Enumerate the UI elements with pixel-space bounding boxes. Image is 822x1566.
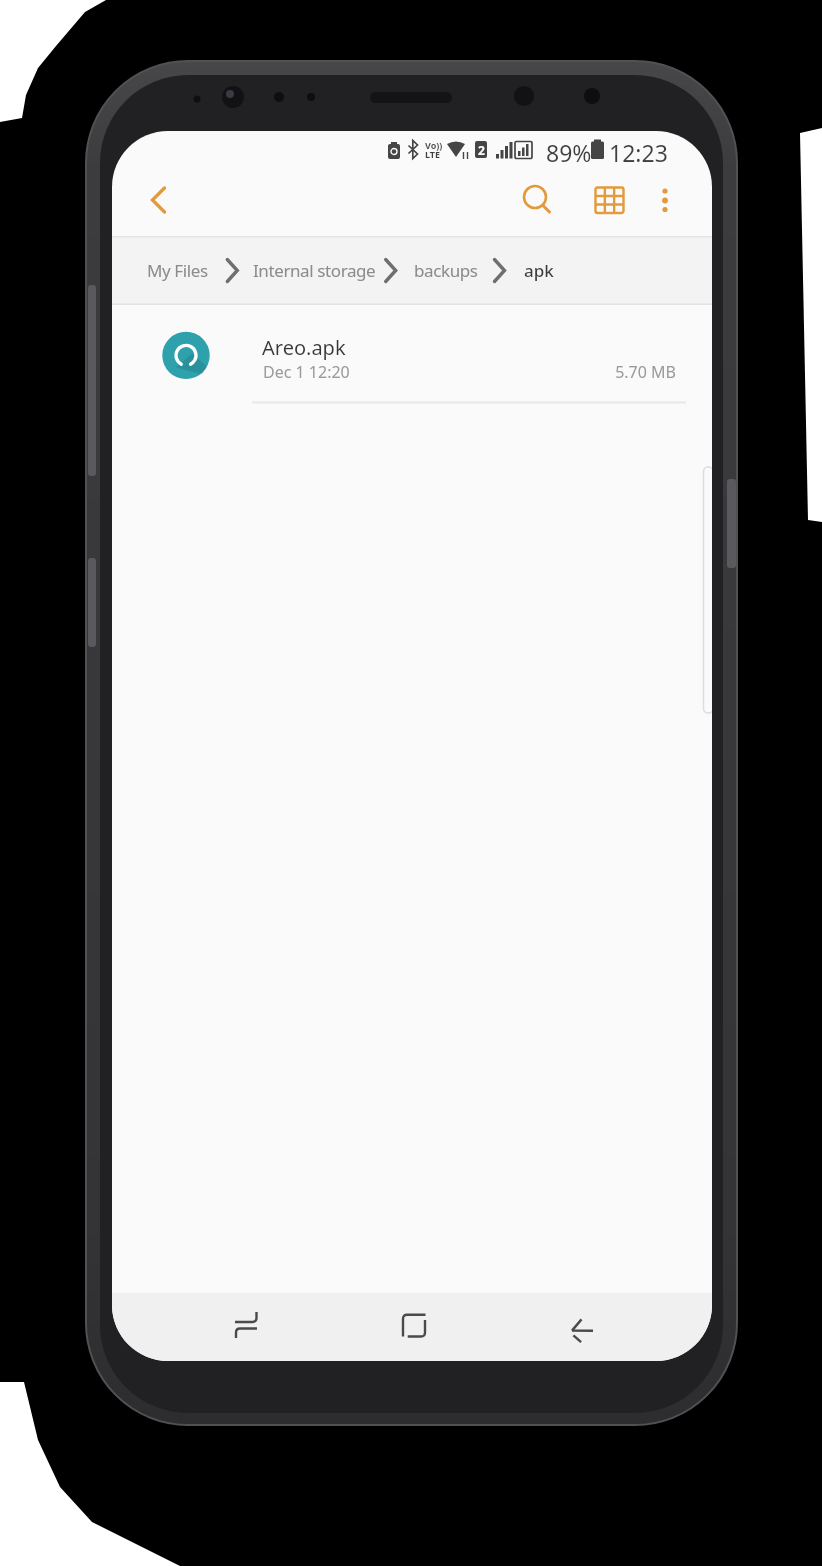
- button[interactable]: [140, 183, 176, 219]
- staticText: 2: [478, 142, 485, 158]
- staticText: 12:23: [609, 137, 668, 168]
- button[interactable]: backups: [414, 259, 478, 282]
- staticText: LTE: [425, 148, 441, 160]
- staticText: Dec 1 12:20: [263, 361, 350, 383]
- staticText: 89%: [546, 137, 592, 168]
- button[interactable]: [388, 1301, 440, 1353]
- button[interactable]: My Files: [147, 259, 208, 282]
- button[interactable]: Areo.apk: [112, 305, 712, 403]
- staticText: Vo)): [425, 139, 443, 151]
- button[interactable]: [518, 181, 556, 219]
- button[interactable]: [592, 183, 628, 219]
- button[interactable]: apk: [524, 259, 554, 282]
- button[interactable]: [558, 1301, 610, 1353]
- staticText: 5.70 MB: [556, 361, 676, 383]
- staticText: Areo.apk: [262, 334, 346, 361]
- button[interactable]: [650, 183, 680, 219]
- button[interactable]: [220, 1301, 272, 1353]
- button[interactable]: Internal storage: [253, 259, 376, 282]
